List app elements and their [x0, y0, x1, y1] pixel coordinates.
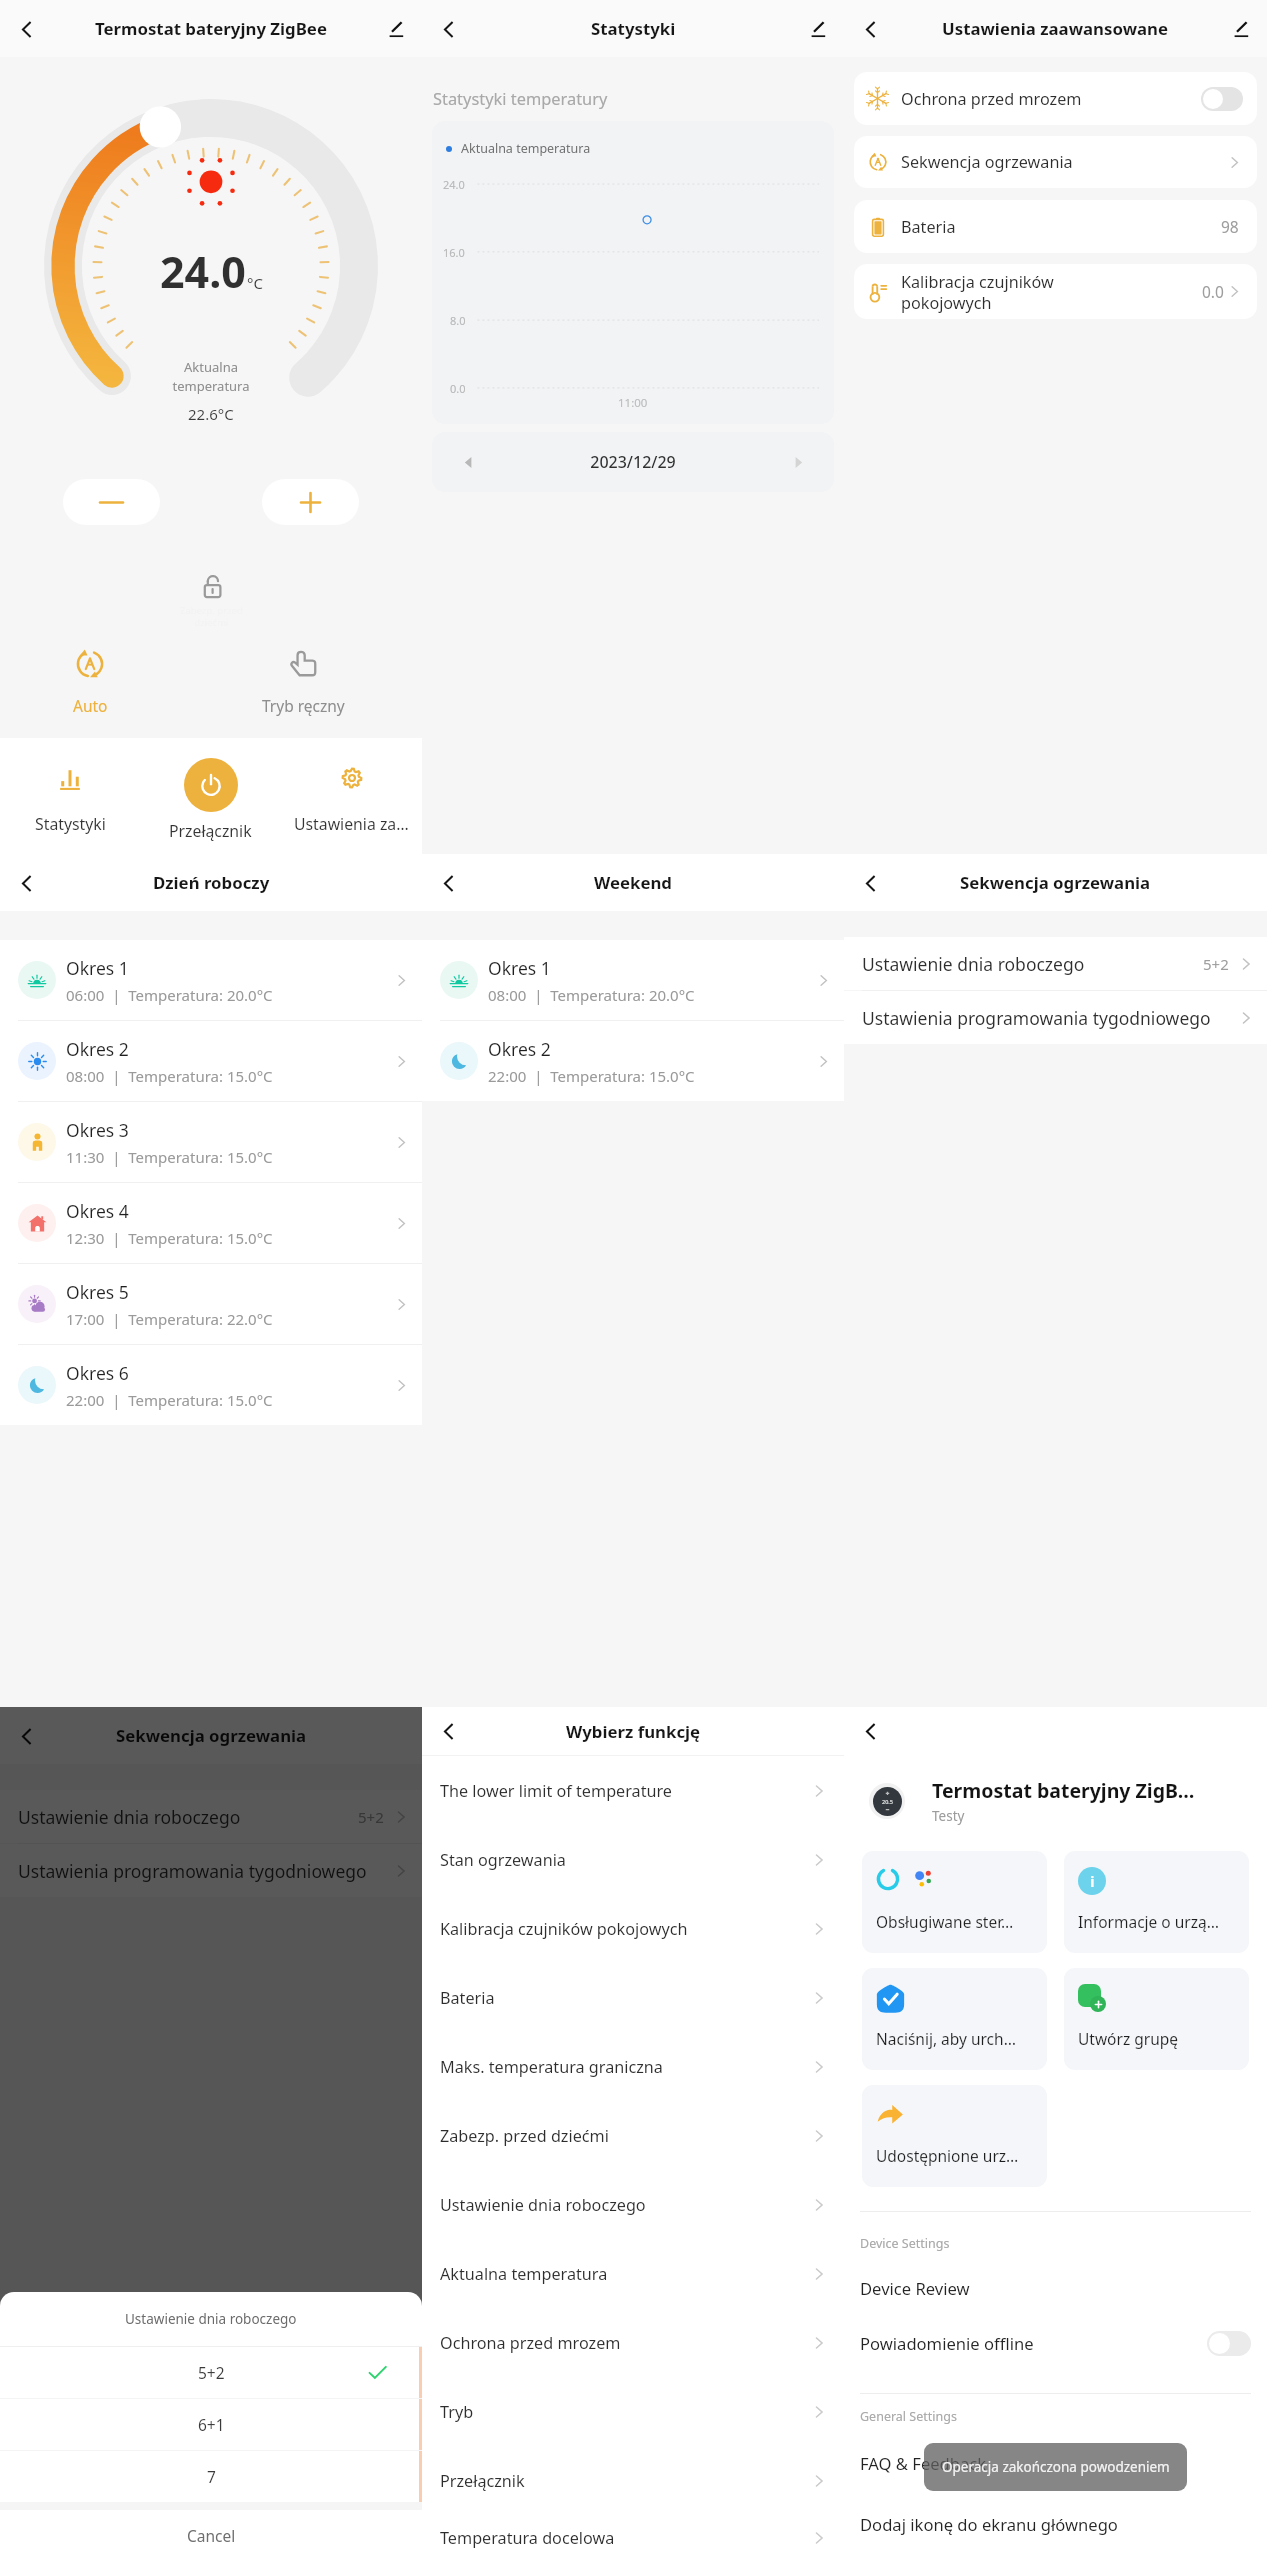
button[interactable]: Naciśnij, aby urch… — [862, 1968, 1047, 2070]
staticText: 5+2 — [358, 1807, 384, 1827]
button[interactable]: Child lock — [180, 571, 243, 629]
button[interactable]: Okres 1 — [422, 940, 844, 1020]
button[interactable]: Aktualna temperatura — [422, 2239, 844, 2308]
button[interactable]: Okres 4 — [0, 1183, 422, 1263]
button[interactable]: Back — [852, 1713, 888, 1749]
button[interactable]: Dodaj ikonę do ekranu głównego — [844, 2510, 1267, 2538]
button[interactable]: Back — [852, 865, 888, 901]
staticText: 0.0 — [450, 381, 466, 396]
staticText: Aktualna temperatura — [172, 358, 250, 395]
staticText: Ochrona przed mrozem — [440, 2332, 810, 2354]
button[interactable]: Okres 6 — [0, 1345, 422, 1425]
button[interactable]: i — [1064, 1851, 1249, 1953]
staticText: Ustawienie dnia roboczego — [125, 2310, 297, 2328]
staticText: °C — [247, 273, 263, 293]
button[interactable]: Tryb ręczny — [253, 647, 353, 716]
button[interactable]: Back — [430, 1713, 466, 1749]
button[interactable]: Edit — [1223, 11, 1259, 47]
button[interactable]: Udostępnione urz… — [862, 2085, 1047, 2187]
button[interactable]: Obsługiwane ster… — [862, 1851, 1047, 1953]
staticText: i — [1090, 1871, 1095, 1891]
staticText: Ustawienia programowania tygodniowego — [18, 1859, 392, 1883]
button[interactable]: Back — [8, 865, 44, 901]
staticText: Ustawienia za… — [294, 813, 409, 835]
button[interactable]: Sekwencja ogrzewania — [854, 136, 1257, 188]
button[interactable]: Ustawienia programowania tygodniowego — [0, 1844, 422, 1897]
staticText: Device Settings — [860, 2235, 950, 2252]
button[interactable]: Frost protection toggle — [1201, 87, 1243, 111]
button[interactable]: Back — [430, 865, 466, 901]
button[interactable]: Auto — [40, 647, 140, 716]
button[interactable]: 6+1 — [0, 2399, 422, 2450]
button[interactable]: Offline notification toggle — [1207, 2331, 1251, 2356]
button[interactable]: Ustawienie dnia roboczego — [422, 2170, 844, 2239]
button[interactable]: Ustawienie dnia roboczego — [844, 937, 1267, 990]
button[interactable]: Temperatura docelowa — [422, 2515, 844, 2560]
staticText: Testy — [932, 1807, 965, 1825]
button[interactable]: Device Review — [844, 2272, 1267, 2304]
staticText: Okres 1 — [66, 956, 129, 980]
staticText: 11:00 — [618, 395, 648, 411]
button[interactable]: Ochrona przed mrozem — [854, 72, 1257, 125]
staticText: Tryb ręczny — [262, 695, 345, 716]
button[interactable]: Back — [8, 1718, 44, 1754]
button[interactable]: 5+2 — [0, 2347, 422, 2398]
button[interactable]: Tryb — [422, 2377, 844, 2446]
button[interactable]: Przełącznik — [140, 738, 281, 854]
staticText: Utwórz grupę — [1078, 2028, 1178, 2049]
button[interactable]: Okres 1 — [0, 940, 422, 1020]
staticText: 08:00 | Temperatura: 15.0°C — [66, 1066, 273, 1086]
button[interactable]: Bateria — [854, 200, 1257, 253]
staticText: 06:00 | Temperatura: 20.0°C — [66, 985, 273, 1005]
staticText: Sekwencja ogrzewania — [901, 151, 1230, 173]
staticText: Cancel — [187, 2525, 236, 2546]
button[interactable]: Decrease temperature — [63, 479, 160, 525]
button[interactable]: Okres 5 — [0, 1264, 422, 1344]
staticText: Okres 3 — [66, 1118, 129, 1142]
staticText: Dodaj ikonę do ekranu głównego — [860, 2513, 1118, 2536]
button[interactable]: Back — [8, 11, 44, 47]
staticText: Informacje o urzą… — [1078, 1911, 1219, 1932]
button[interactable]: Maks. temperatura graniczna — [422, 2032, 844, 2101]
button[interactable]: FAQ & Feedback — [844, 2449, 1267, 2477]
staticText: Statystyki — [35, 813, 106, 835]
button[interactable]: Przełącznik — [422, 2446, 844, 2515]
staticText: Operacja zakończona powodzeniem — [942, 2458, 1170, 2476]
staticText: Sekwencja ogrzewania — [116, 1724, 307, 1747]
staticText: Auto — [73, 695, 108, 716]
staticText: 0.0 — [1202, 281, 1224, 302]
button[interactable]: Back — [852, 11, 888, 47]
button[interactable]: Okres 2 — [0, 1021, 422, 1101]
button[interactable]: The lower limit of temperature — [422, 1756, 844, 1825]
button[interactable]: Increase temperature — [262, 479, 359, 525]
button[interactable]: Ustawienia za… — [281, 738, 422, 854]
button[interactable]: Previous day — [432, 432, 504, 492]
button[interactable]: Powiadomienie offline — [844, 2326, 1267, 2360]
staticText: Kalibracja czujników pokojowych — [901, 271, 1202, 313]
button[interactable]: Okres 2 — [422, 1021, 844, 1101]
button[interactable]: Zabezp. przed dziećmi — [422, 2101, 844, 2170]
staticText: 8.0 — [450, 313, 466, 328]
button[interactable]: Utwórz grupę — [1064, 1968, 1249, 2070]
staticText: 22:00 | Temperatura: 15.0°C — [66, 1390, 273, 1410]
button[interactable]: Edit — [800, 11, 836, 47]
staticText: Tryb — [440, 2401, 810, 2423]
staticText: Sekwencja ogrzewania — [960, 871, 1151, 894]
button[interactable]: Ustawienie dnia roboczego — [0, 1790, 422, 1843]
staticText: General Settings — [860, 2408, 957, 2425]
button[interactable]: Statystyki — [0, 738, 140, 854]
button[interactable]: 7 — [0, 2451, 422, 2502]
button[interactable]: Back — [430, 11, 466, 47]
button[interactable]: Ustawienia programowania tygodniowego — [844, 991, 1267, 1044]
button[interactable]: Edit — [378, 11, 414, 47]
button[interactable]: Okres 3 — [0, 1102, 422, 1182]
staticText: Przełącznik — [169, 820, 252, 842]
button[interactable]: Kalibracja czujników pokojowych — [422, 1894, 844, 1963]
button[interactable]: Bateria — [422, 1963, 844, 2032]
button[interactable]: Cancel — [0, 2510, 422, 2560]
button[interactable]: Ochrona przed mrozem — [422, 2308, 844, 2377]
button[interactable]: Kalibracja czujników pokojowych — [854, 264, 1257, 319]
staticText: 98 — [1221, 216, 1239, 237]
button[interactable]: Stan ogrzewania — [422, 1825, 844, 1894]
